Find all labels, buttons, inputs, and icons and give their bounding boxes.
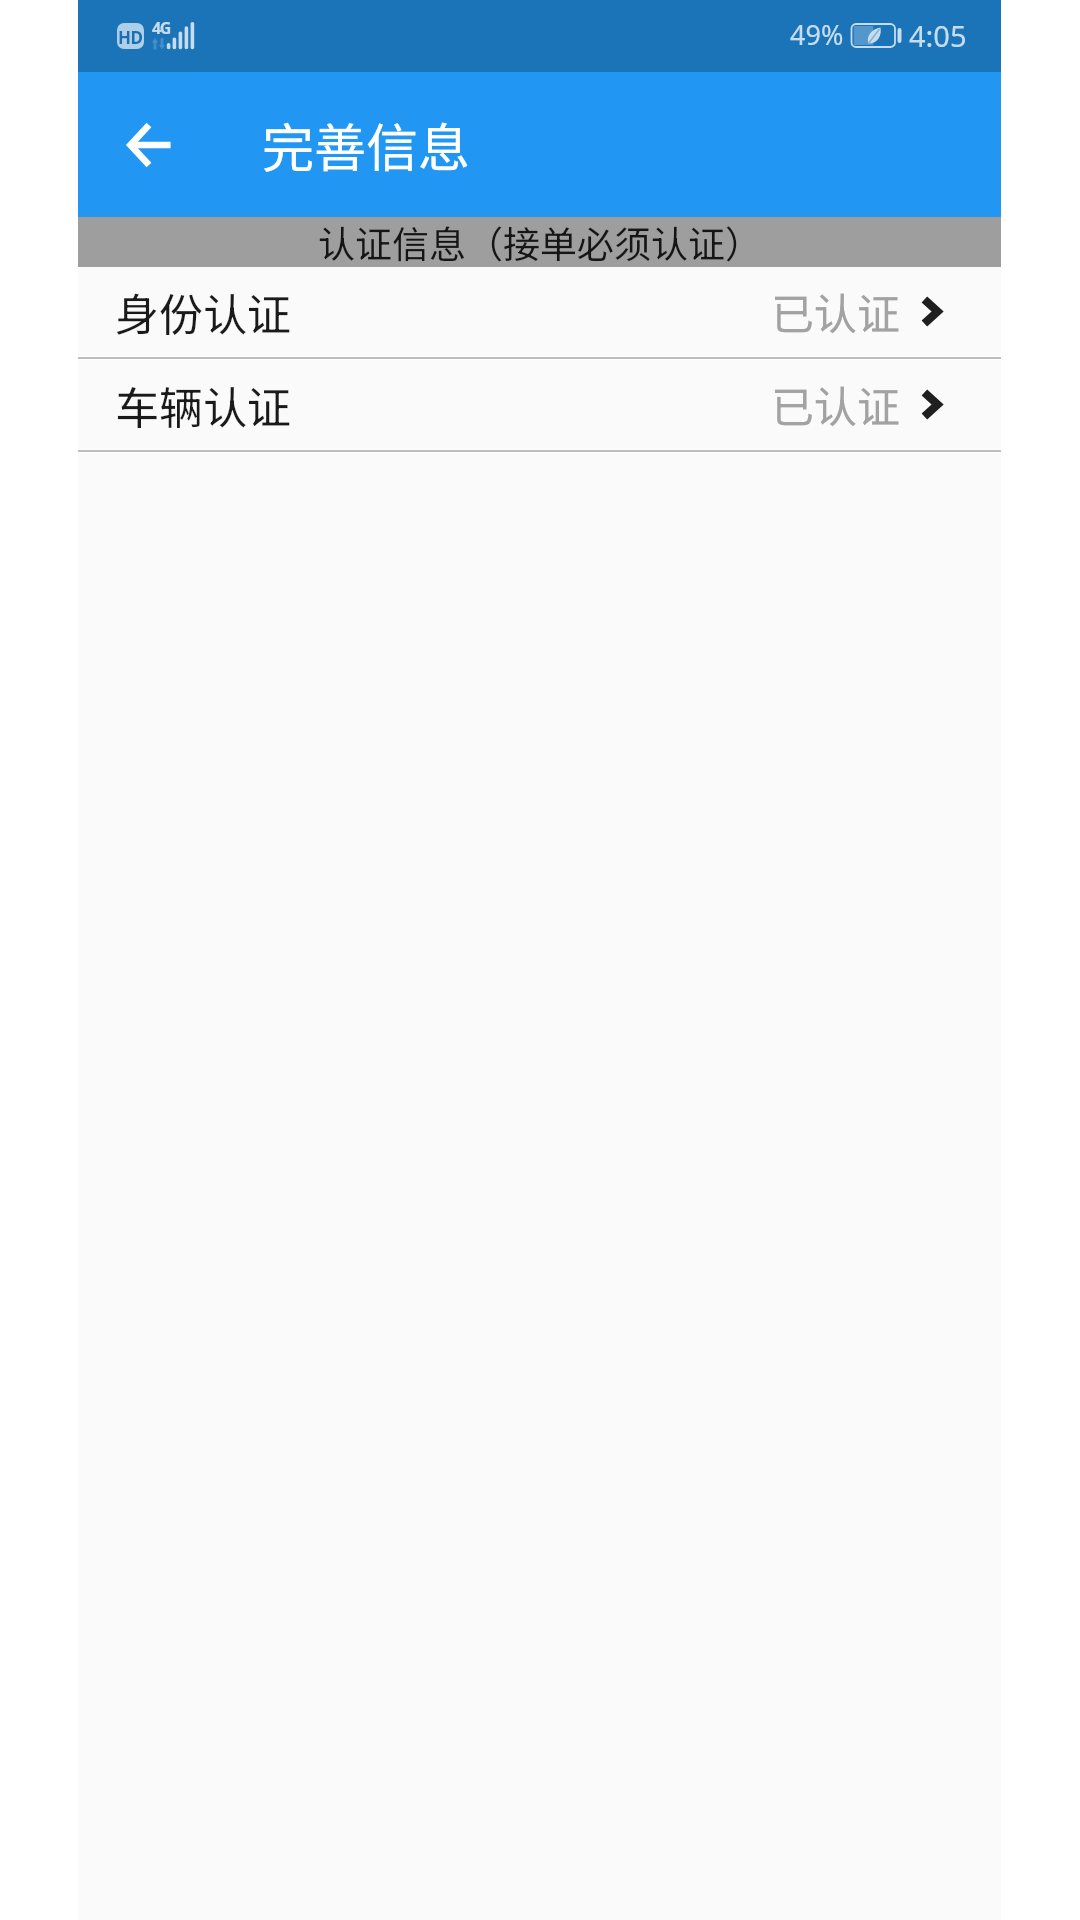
staticText: 49%	[790, 16, 844, 53]
staticText: 完善信息	[262, 107, 471, 182]
button[interactable]: 身份认证	[78, 267, 1001, 356]
staticText: 身份认证	[115, 280, 291, 344]
staticText: 已认证	[771, 373, 900, 435]
button[interactable]: Back	[101, 97, 197, 193]
staticText: 车辆认证	[115, 373, 291, 437]
staticText: 4G	[152, 17, 170, 39]
staticText: 已认证	[771, 280, 900, 342]
staticText: 认证信息（接单必须认证）	[318, 215, 762, 265]
button[interactable]: 车辆认证	[78, 360, 1001, 449]
staticText: HD	[118, 26, 143, 49]
staticText: 4:05	[909, 16, 967, 55]
